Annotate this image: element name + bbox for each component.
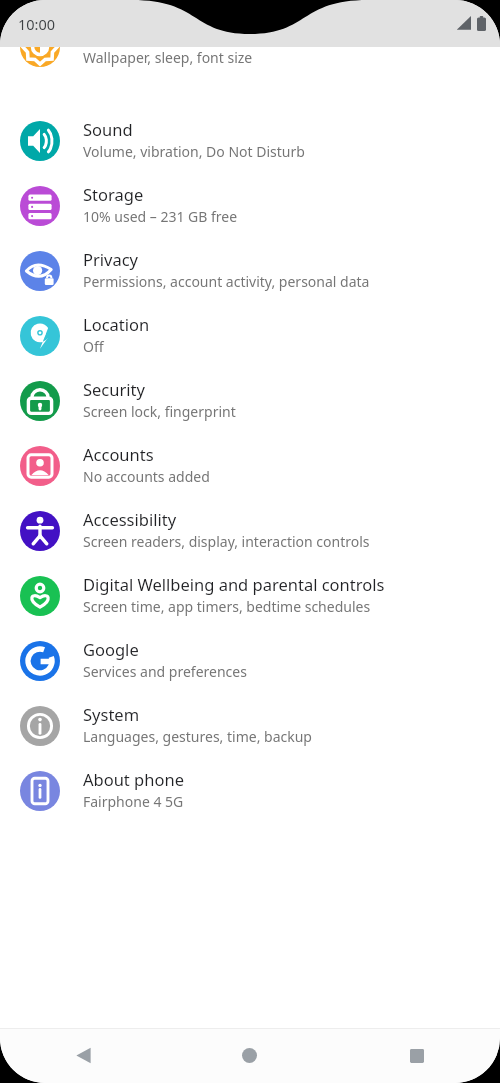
button[interactable]: Google	[0, 630, 500, 695]
staticText: Sound	[83, 118, 133, 140]
button[interactable]: Privacy	[0, 240, 500, 305]
staticText: Location	[83, 313, 150, 335]
button[interactable]: Home	[166, 1028, 333, 1083]
staticText: Accounts	[83, 443, 154, 465]
button[interactable]: Accounts	[0, 435, 500, 500]
button[interactable]: Accessibility	[0, 500, 500, 565]
staticText: Services and preferences	[83, 662, 247, 681]
button[interactable]: Back	[0, 1028, 166, 1083]
button[interactable]: Location	[0, 305, 500, 370]
staticText: 10:00	[18, 14, 56, 34]
staticText: Screen lock, fingerprint	[83, 402, 236, 421]
staticText: Volume, vibration, Do Not Disturb	[83, 142, 305, 161]
staticText: Screen time, app timers, bedtime schedul…	[83, 597, 371, 616]
staticText: About phone	[83, 768, 184, 790]
staticText: Accessibility	[83, 508, 177, 530]
staticText: Google	[83, 638, 139, 660]
button[interactable]: About phone	[0, 760, 500, 825]
button[interactable]: System	[0, 695, 500, 760]
staticText: Screen readers, display, interaction con…	[83, 532, 370, 551]
button[interactable]: Digital Wellbeing and parental controls	[0, 565, 500, 630]
button[interactable]: Storage	[0, 175, 500, 240]
staticText: Storage	[83, 183, 144, 205]
staticText: 10% used – 231 GB free	[83, 207, 238, 226]
staticText: Off	[83, 337, 104, 356]
button[interactable]: Recent apps	[333, 1028, 500, 1083]
button[interactable]: Display	[0, 47, 500, 90]
staticText: Digital Wellbeing and parental controls	[83, 573, 385, 595]
staticText: Permissions, account activity, personal …	[83, 272, 370, 291]
staticText: Wallpaper, sleep, font size	[83, 48, 253, 67]
staticText: Languages, gestures, time, backup	[83, 727, 312, 746]
staticText: No accounts added	[83, 467, 210, 486]
staticText: Security	[83, 378, 145, 400]
staticText: Fairphone 4 5G	[83, 792, 184, 811]
staticText: System	[83, 703, 140, 725]
button[interactable]: Sound	[0, 110, 500, 175]
button[interactable]: Security	[0, 370, 500, 435]
staticText: Privacy	[83, 248, 139, 270]
